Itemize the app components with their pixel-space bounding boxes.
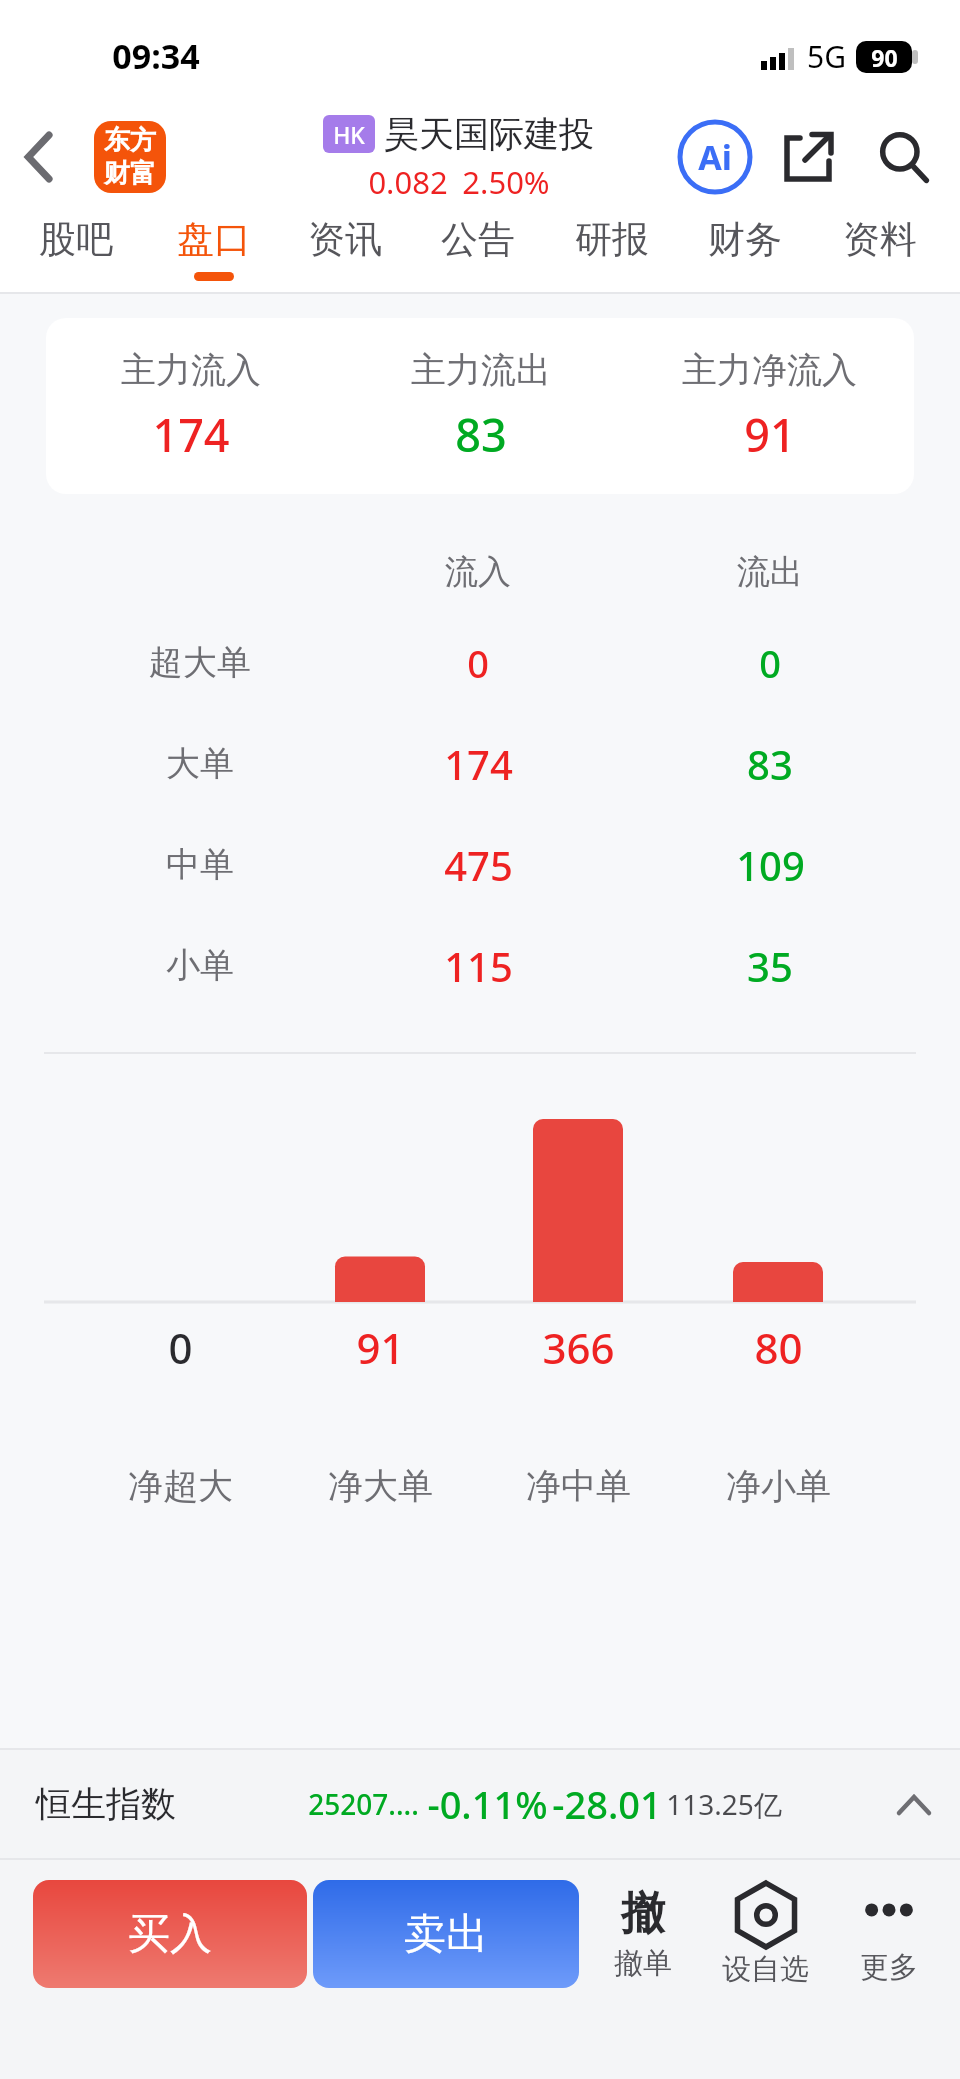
staticText: 0.082 xyxy=(368,161,448,202)
button[interactable]: 设自选 xyxy=(706,1876,824,1992)
staticText: 0 xyxy=(467,637,489,689)
button[interactable]: 超大单 xyxy=(0,612,960,713)
staticText: 115 xyxy=(444,939,513,993)
staticText: 流出 xyxy=(737,551,803,593)
staticText: 盘口 xyxy=(177,216,251,263)
staticText: 小单 xyxy=(166,944,234,987)
button[interactable]: 中单 xyxy=(0,814,960,915)
button[interactable]: 研报 xyxy=(550,202,674,294)
button[interactable]: 主力流入 xyxy=(46,318,914,494)
button[interactable]: AI assistant xyxy=(674,116,756,198)
staticText: 5G xyxy=(807,36,846,77)
button[interactable]: 小单 xyxy=(0,915,960,1016)
staticText: 更多 xyxy=(860,1949,918,1986)
staticText: 91 xyxy=(744,404,796,465)
staticText: 35 xyxy=(747,939,793,993)
button[interactable]: Expand index panel xyxy=(890,1780,938,1828)
staticText: 公告 xyxy=(441,216,515,263)
staticText: -0.11% xyxy=(427,1778,548,1830)
staticText: HK xyxy=(333,119,365,150)
staticText: 资讯 xyxy=(308,216,382,263)
button[interactable]: 资料 xyxy=(818,202,942,294)
staticText: 研报 xyxy=(575,216,649,263)
button[interactable]: 恒生指数 xyxy=(0,1748,960,1860)
button[interactable]: 股吧 xyxy=(14,202,138,294)
button[interactable]: 更多 xyxy=(834,1876,944,1992)
staticText: 流入 xyxy=(445,551,511,593)
staticText: 净超大 xyxy=(128,1464,233,1508)
staticText: 2.50% xyxy=(462,161,550,202)
button[interactable]: 大单 xyxy=(0,713,960,814)
staticText: 80 xyxy=(754,1319,803,1376)
staticText: 09:34 xyxy=(112,33,200,79)
button[interactable]: 卖出 xyxy=(313,1880,579,1988)
button[interactable]: Share xyxy=(768,117,848,197)
button[interactable]: 买入 xyxy=(33,1880,307,1988)
staticText: 中单 xyxy=(166,843,234,886)
button[interactable]: Back xyxy=(0,117,80,197)
staticText: 475 xyxy=(444,838,513,892)
button[interactable]: East Money home xyxy=(94,121,166,193)
staticText: 超大单 xyxy=(149,641,251,684)
staticText: 113.25亿 xyxy=(666,1785,782,1823)
staticText: 91 xyxy=(356,1319,405,1376)
staticText: 东方 xyxy=(104,124,156,157)
button[interactable]: 盘口 xyxy=(152,202,276,294)
staticText: 主力流入 xyxy=(121,348,261,392)
staticText: 资料 xyxy=(843,216,917,263)
staticText: 0 xyxy=(168,1319,193,1376)
staticText: 撤单 xyxy=(614,1945,672,1982)
button[interactable]: 流入 xyxy=(0,532,960,612)
staticText: 净中单 xyxy=(526,1464,631,1508)
staticText: 大单 xyxy=(166,742,234,785)
staticText: 366 xyxy=(542,1319,615,1376)
staticText: 0 xyxy=(759,637,781,689)
staticText: 109 xyxy=(736,838,805,892)
button[interactable]: 财务 xyxy=(683,202,807,294)
staticText: 25207.... xyxy=(308,1785,419,1823)
staticText: 174 xyxy=(152,404,230,465)
staticText: 83 xyxy=(455,404,507,465)
staticText: 财富 xyxy=(104,157,156,190)
button[interactable]: Search xyxy=(864,117,944,197)
staticText: 净大单 xyxy=(328,1464,433,1508)
staticText: 昊天国际建投 xyxy=(384,112,594,156)
staticText: -28.01 xyxy=(552,1778,662,1830)
button[interactable]: 公告 xyxy=(416,202,540,294)
staticText: 买入 xyxy=(128,1908,212,1961)
button[interactable]: 撤 xyxy=(588,1876,698,1992)
staticText: 主力流出 xyxy=(411,348,551,392)
staticText: 卖出 xyxy=(404,1908,488,1961)
staticText: 撤 xyxy=(621,1886,665,1941)
staticText: 财务 xyxy=(708,216,782,263)
staticText: 恒生指数 xyxy=(36,1782,176,1826)
staticText: 净小单 xyxy=(726,1464,831,1508)
staticText: 主力净流入 xyxy=(682,348,857,392)
button[interactable]: 资讯 xyxy=(283,202,407,294)
staticText: 设自选 xyxy=(722,1951,809,1988)
staticText: Ai xyxy=(698,134,732,180)
staticText: 90 xyxy=(871,42,898,73)
staticText: 174 xyxy=(444,737,513,791)
staticText: 83 xyxy=(747,737,793,791)
staticText: 股吧 xyxy=(39,216,113,263)
